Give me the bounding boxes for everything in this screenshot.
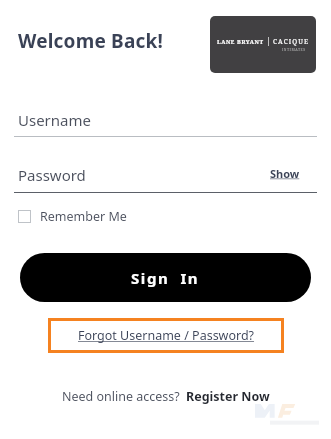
staticText: Sign In — [131, 268, 200, 288]
button[interactable]: Register Now — [186, 388, 270, 405]
button[interactable]: Sign In — [20, 253, 311, 302]
staticText: Remember Me — [40, 208, 127, 225]
staticText: Show — [270, 166, 300, 181]
button[interactable]: Show — [268, 164, 302, 183]
staticText: Welcome Back! — [18, 28, 164, 54]
staticText: Forgot Username / Password? — [78, 327, 255, 344]
button[interactable]: Forgot Username / Password? — [48, 318, 284, 353]
staticText: Register Now — [186, 388, 270, 405]
staticText: Need online access? — [62, 388, 180, 405]
staticText: Username — [18, 110, 91, 130]
staticText: LANE BRYANT — [217, 38, 264, 45]
staticText: CACIQUE — [273, 37, 310, 46]
staticText: Password — [18, 165, 86, 185]
staticText: INTIMATES — [282, 47, 306, 52]
button[interactable]: Remember Me — [14, 204, 131, 229]
